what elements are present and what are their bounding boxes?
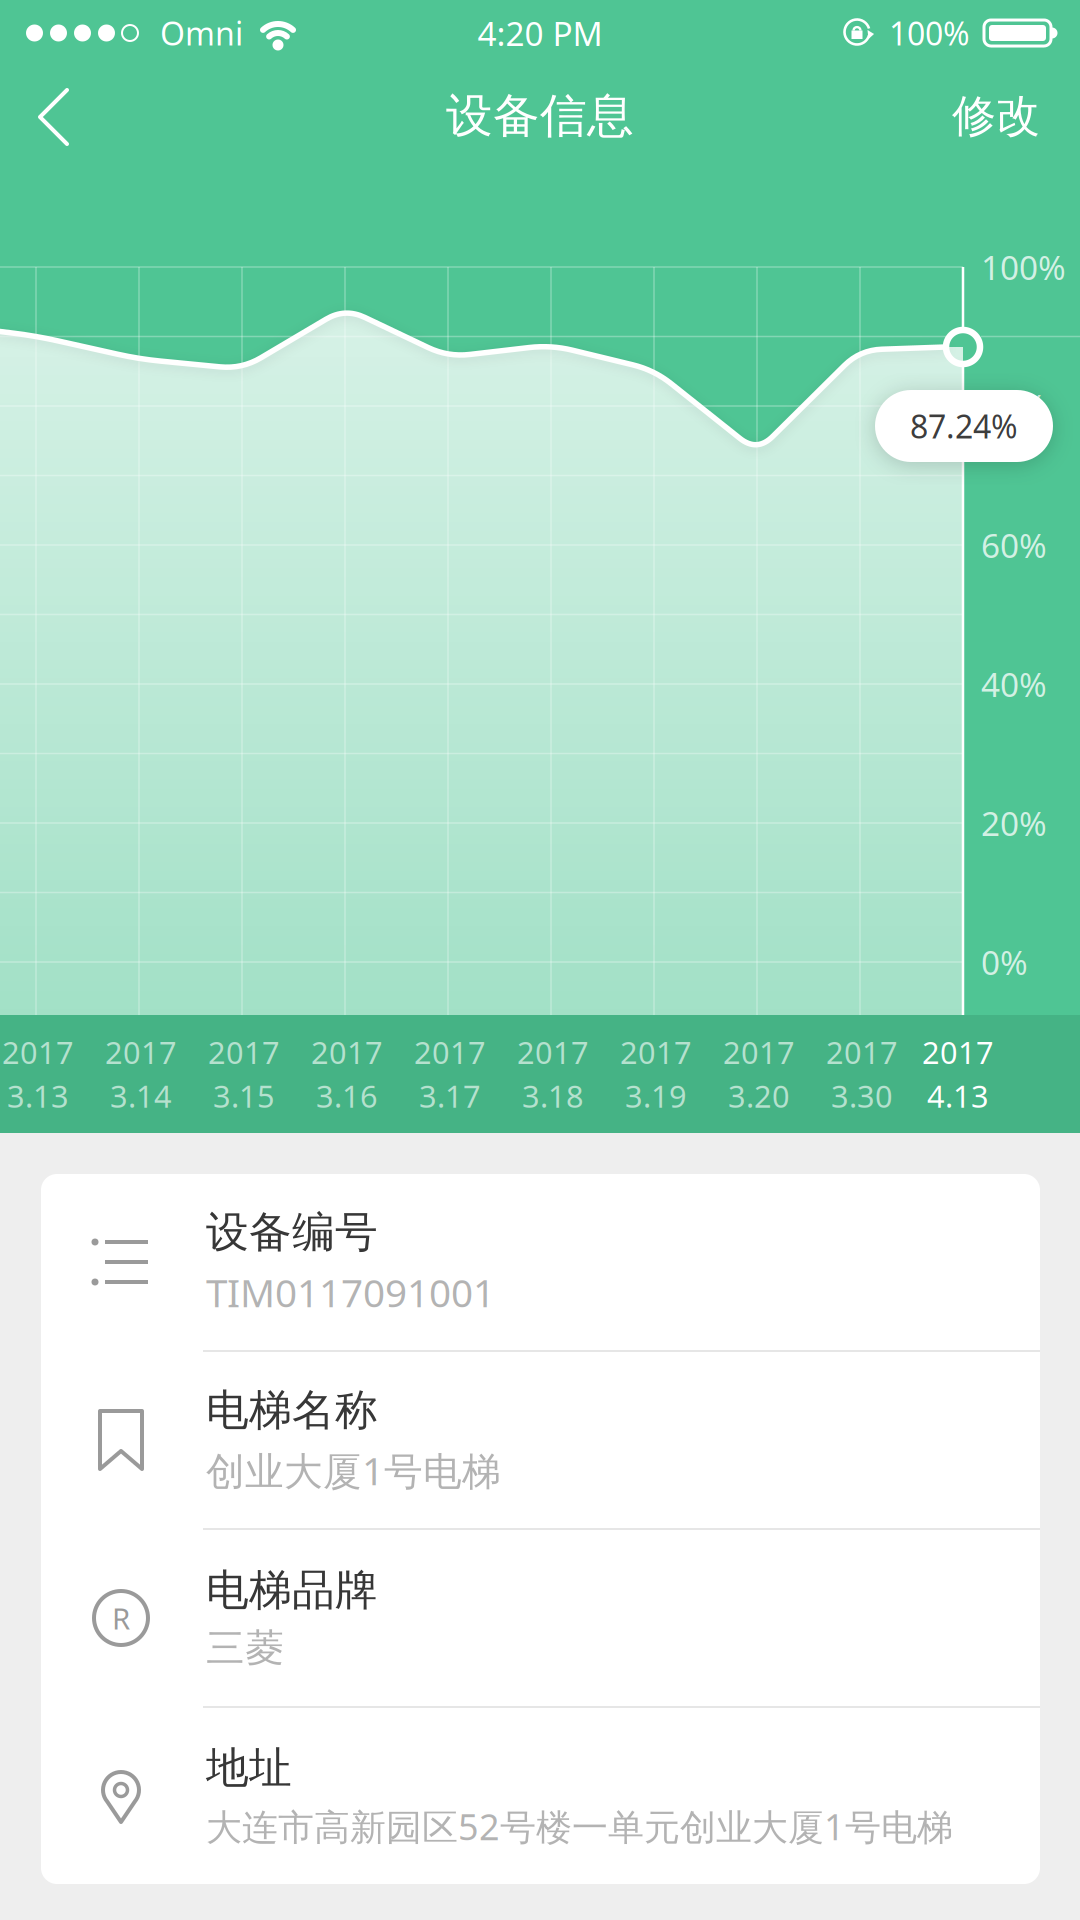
- staticText: 100%: [981, 245, 1066, 289]
- staticText: 3.13: [7, 1075, 69, 1116]
- staticText: 电梯名称: [206, 1384, 378, 1436]
- staticText: 3.20: [728, 1075, 790, 1116]
- staticText: 2017: [620, 1032, 692, 1072]
- button[interactable]: 2017: [208, 1032, 280, 1116]
- staticText: 0%: [981, 940, 1028, 984]
- button[interactable]: 2017: [922, 1032, 994, 1116]
- staticText: 3.15: [213, 1075, 275, 1116]
- staticText: 2017: [517, 1032, 589, 1072]
- staticText: R: [112, 1598, 130, 1637]
- staticText: 4.13: [927, 1075, 989, 1116]
- staticText: 三菱: [206, 1624, 284, 1672]
- button[interactable]: 电梯名称: [41, 1352, 1040, 1528]
- staticText: 2017: [723, 1032, 795, 1072]
- staticText: 修改: [952, 89, 1040, 143]
- staticText: 大连市高新园区52号楼一单元创业大厦1号电梯: [206, 1802, 953, 1850]
- staticText: 创业大厦1号电梯: [206, 1444, 501, 1496]
- button[interactable]: 2017: [414, 1032, 486, 1116]
- staticText: Omni: [160, 12, 243, 54]
- staticText: 电梯品牌: [206, 1564, 378, 1616]
- staticText: 2017: [2, 1032, 74, 1072]
- button[interactable]: 地址: [41, 1708, 1040, 1884]
- button[interactable]: 2017: [723, 1032, 795, 1116]
- staticText: 80%: [981, 384, 1047, 428]
- button[interactable]: 2017: [2, 1032, 74, 1116]
- staticText: 3.16: [316, 1075, 378, 1116]
- staticText: 60%: [981, 523, 1047, 567]
- staticText: 4:20 PM: [477, 11, 602, 55]
- staticText: 3.14: [110, 1075, 172, 1116]
- staticText: 设备信息: [446, 87, 634, 145]
- staticText: 设备编号: [206, 1206, 378, 1258]
- staticText: 2017: [105, 1032, 177, 1072]
- staticText: 3.18: [522, 1075, 584, 1116]
- staticText: 3.17: [419, 1075, 481, 1116]
- staticText: 20%: [981, 801, 1047, 845]
- staticText: 3.19: [625, 1075, 687, 1116]
- button[interactable]: 2017: [620, 1032, 692, 1116]
- staticText: 2017: [208, 1032, 280, 1072]
- button[interactable]: 2017: [826, 1032, 898, 1116]
- staticText: 2017: [826, 1032, 898, 1072]
- staticText: 2017: [414, 1032, 486, 1072]
- staticText: 3.30: [831, 1075, 893, 1116]
- button[interactable]: 2017: [517, 1032, 589, 1116]
- staticText: TIM0117091001: [206, 1266, 495, 1318]
- staticText: 2017: [311, 1032, 383, 1072]
- button[interactable]: 修改: [952, 89, 1080, 143]
- staticText: 100%: [889, 12, 970, 54]
- button[interactable]: 2017: [105, 1032, 177, 1116]
- staticText: 87.24%: [910, 405, 1018, 447]
- button[interactable]: Back: [0, 87, 74, 145]
- staticText: 40%: [981, 662, 1047, 706]
- button[interactable]: 设备编号: [41, 1174, 1040, 1350]
- staticText: 地址: [206, 1742, 292, 1794]
- button[interactable]: R: [41, 1530, 1040, 1706]
- button[interactable]: 2017: [311, 1032, 383, 1116]
- staticText: 2017: [922, 1032, 994, 1072]
